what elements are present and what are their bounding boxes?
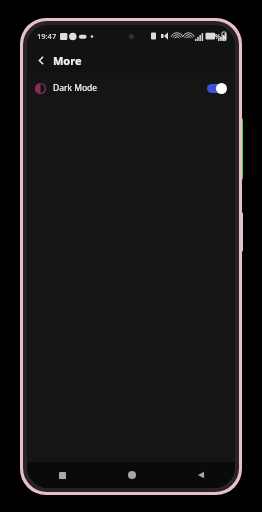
- button[interactable]: Home: [97, 462, 166, 488]
- staticText: More: [53, 53, 82, 68]
- button[interactable]: Recent apps: [27, 462, 97, 488]
- staticText: Dark Mode: [53, 82, 98, 94]
- button[interactable]: Back: [31, 50, 51, 70]
- staticText: 76%: [206, 31, 221, 41]
- button[interactable]: Back: [166, 462, 235, 488]
- button[interactable]: Dark Mode toggle: [207, 82, 227, 94]
- staticText: 19:47: [37, 31, 57, 41]
- button[interactable]: Dark Mode: [27, 73, 235, 103]
